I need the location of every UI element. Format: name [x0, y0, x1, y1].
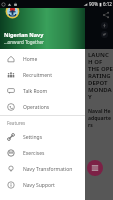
staticText: Talk Room [23, 88, 48, 95]
staticText: Settings [23, 134, 43, 141]
staticText: Exercises [23, 150, 45, 157]
button[interactable]: Exercises [0, 145, 85, 161]
button[interactable]: Settings [0, 129, 85, 145]
staticText: Home [23, 56, 38, 63]
staticText: Operations [23, 104, 50, 111]
staticText: Naval Headquarters [88, 108, 113, 129]
staticText: Navy Support [23, 182, 55, 189]
button[interactable]: Navy Support [0, 177, 85, 193]
button[interactable]: Twitter [101, 31, 108, 38]
button[interactable]: Talk Room [0, 83, 85, 99]
staticText: ...onward Together [4, 39, 44, 45]
button[interactable]: Home [0, 51, 85, 67]
button[interactable]: Share [102, 11, 110, 19]
button[interactable]: Recruitment [0, 67, 85, 83]
button[interactable]: Operations [0, 99, 85, 115]
staticText: Navy Transformation [23, 166, 73, 173]
button[interactable]: Menu [87, 160, 103, 176]
button[interactable]: Navy Transformation [0, 161, 85, 177]
staticText: Features [7, 120, 26, 126]
staticText: 90% [89, 1, 98, 7]
staticText: Nigerian Navy [4, 31, 44, 38]
staticText: Recruitment [23, 72, 52, 79]
button[interactable]: Facebook [101, 22, 108, 29]
staticText: 6:12 [103, 1, 112, 7]
staticText: LAUNCH OF THE OPERATING DEPOT MONDAY [88, 51, 113, 101]
